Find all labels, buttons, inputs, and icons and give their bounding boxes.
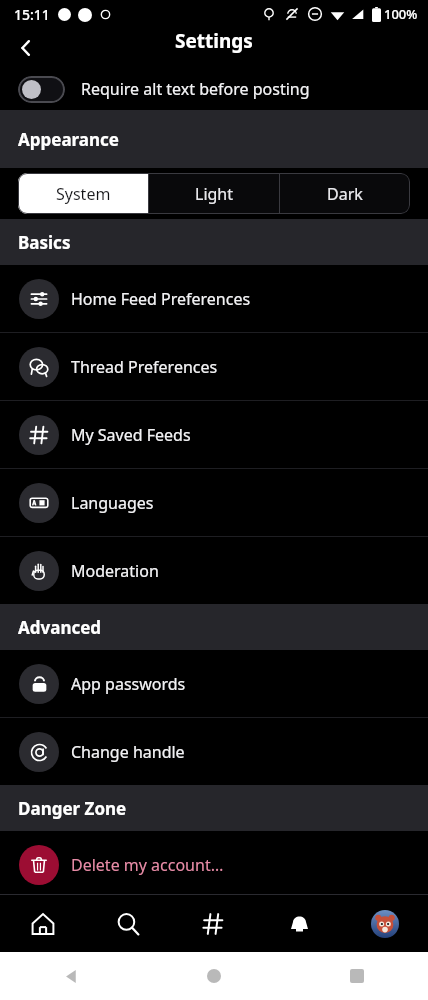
staticText: App passwords (71, 673, 186, 695)
button[interactable]: My Saved Feeds (0, 401, 428, 468)
button[interactable]: Moderation (0, 537, 428, 604)
button[interactable]: App passwords (0, 650, 428, 717)
staticText: Danger Zone (18, 797, 127, 820)
staticText: Settings (175, 28, 253, 54)
staticText: Require alt text before posting (81, 78, 310, 100)
staticText: Advanced (18, 616, 102, 639)
staticText: Thread Preferences (71, 356, 218, 378)
button[interactable]: Require alt text before posting (0, 68, 428, 110)
staticText: Home Feed Preferences (71, 288, 251, 310)
button[interactable]: System (18, 173, 148, 214)
staticText: Delete my account… (71, 854, 224, 876)
button[interactable]: Profile (342, 895, 428, 952)
staticText: Moderation (71, 560, 159, 582)
button[interactable]: Back (6, 28, 46, 68)
staticText: My Saved Feeds (71, 424, 191, 446)
button[interactable]: Search (85, 895, 170, 952)
button[interactable]: Home Feed Preferences (0, 265, 428, 332)
staticText: Light (195, 183, 234, 205)
staticText: Languages (71, 492, 154, 514)
button[interactable]: Delete my account… (0, 831, 428, 898)
staticText: 100% (384, 5, 418, 23)
staticText: Appearance (18, 128, 119, 151)
button[interactable]: Notifications (256, 895, 342, 952)
button[interactable]: Thread Preferences (0, 333, 428, 400)
staticText: Basics (18, 231, 71, 254)
staticText: Change handle (71, 741, 185, 763)
staticText: 15:11 (14, 5, 50, 24)
button[interactable]: Light (149, 173, 279, 214)
button[interactable]: Feeds (170, 895, 256, 952)
button[interactable]: Languages (0, 469, 428, 536)
staticText: System (56, 183, 111, 205)
button[interactable]: Change handle (0, 718, 428, 785)
staticText: Dark (327, 183, 363, 205)
button[interactable]: Dark (280, 173, 410, 214)
button[interactable]: Home (0, 895, 85, 952)
